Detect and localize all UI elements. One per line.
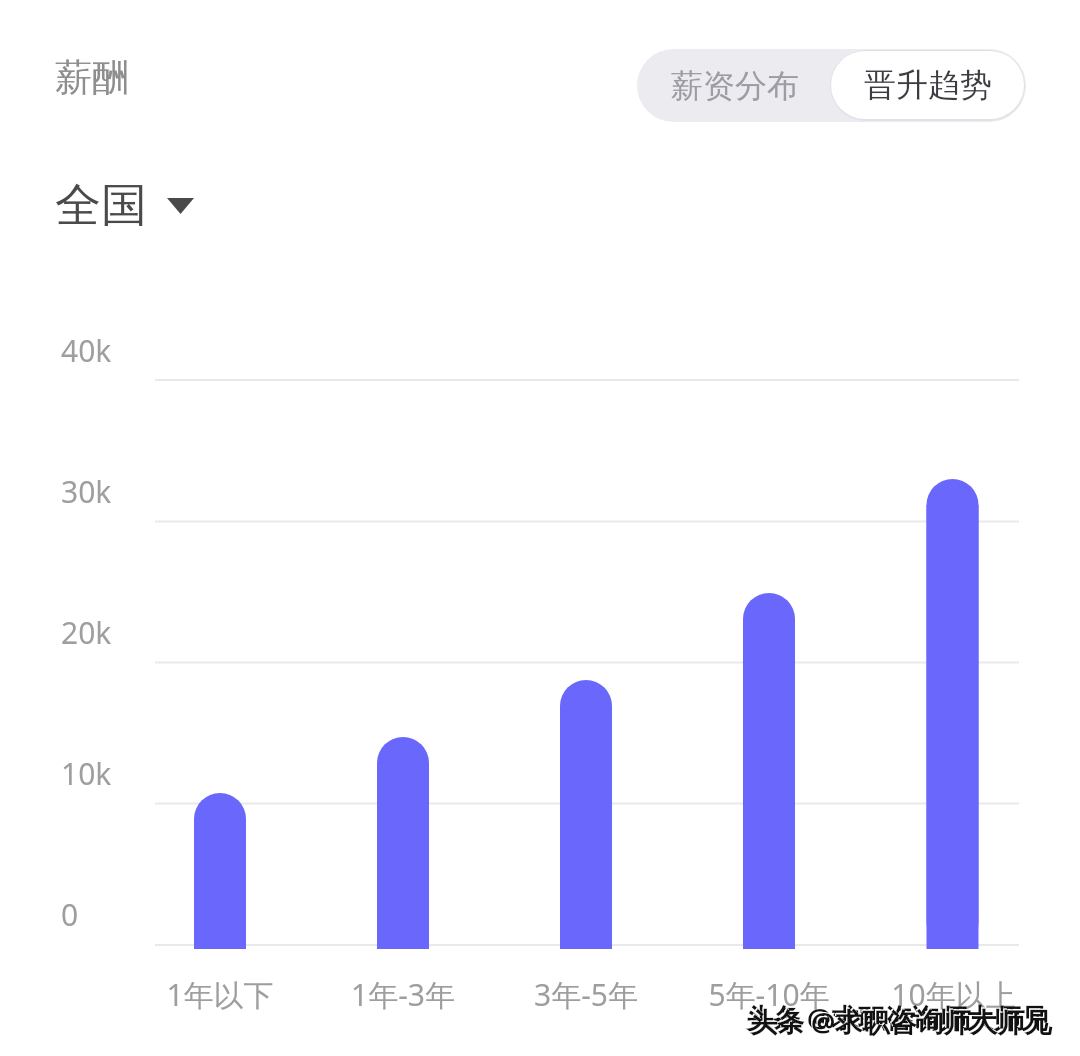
staticText: 10年以上 xyxy=(891,974,1016,1015)
staticText: 40k xyxy=(61,330,112,371)
button[interactable]: 1年以下 xyxy=(120,974,320,1015)
staticText: 3年-5年 xyxy=(534,974,638,1015)
staticText: 0 xyxy=(61,894,79,935)
staticText: 10k xyxy=(61,753,112,794)
staticText: 薪酬 xyxy=(55,54,129,101)
button[interactable]: 1年-3年 xyxy=(303,974,503,1015)
staticText: 20k xyxy=(61,612,112,653)
staticText: 30k xyxy=(61,471,112,512)
staticText: 薪资分布 xyxy=(671,66,799,106)
button[interactable]: 5年-10年 xyxy=(669,974,869,1015)
staticText: 头条 @求职咨询师大师兄 xyxy=(749,1002,1051,1039)
staticText: 头条 @求职咨询师大师兄 xyxy=(746,999,1048,1036)
button[interactable]: 3年-5年 xyxy=(486,974,686,1015)
button[interactable]: Choose region xyxy=(55,177,194,235)
staticText: 1年以下 xyxy=(166,974,274,1015)
button[interactable]: 10年以上 xyxy=(853,974,1053,1015)
staticText: 1年-3年 xyxy=(351,974,455,1015)
staticText: 5年-10年 xyxy=(708,974,830,1015)
staticText: 头条 @求职咨询师大师兄 xyxy=(750,1003,1052,1040)
button[interactable]: 晋升趋势 xyxy=(831,51,1024,119)
button[interactable]: 薪资分布 xyxy=(637,49,832,122)
staticText: 全国 xyxy=(55,177,147,235)
staticText: 晋升趋势 xyxy=(864,65,992,105)
